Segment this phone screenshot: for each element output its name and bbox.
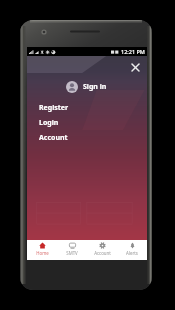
button[interactable]: Account bbox=[27, 130, 147, 145]
staticText: 12:21 PM bbox=[121, 48, 145, 55]
button[interactable]: Home bbox=[27, 240, 57, 258]
button[interactable]: Account bbox=[87, 240, 117, 258]
staticText: Login bbox=[39, 118, 59, 128]
button[interactable]: SMTV bbox=[57, 240, 87, 258]
button[interactable]: Register bbox=[27, 100, 147, 115]
staticText: Account bbox=[39, 133, 68, 143]
button[interactable]: Login bbox=[27, 115, 147, 130]
button[interactable]: Sign in bbox=[66, 81, 107, 93]
staticText: Sign in bbox=[83, 82, 107, 92]
staticText: Alerts bbox=[126, 250, 138, 256]
staticText: Home bbox=[36, 250, 49, 256]
staticText: Register bbox=[39, 103, 69, 113]
button[interactable]: Close bbox=[127, 59, 143, 75]
button[interactable]: Alerts bbox=[117, 240, 147, 258]
staticText: SMTV bbox=[66, 250, 78, 256]
staticText: Account bbox=[94, 250, 111, 256]
